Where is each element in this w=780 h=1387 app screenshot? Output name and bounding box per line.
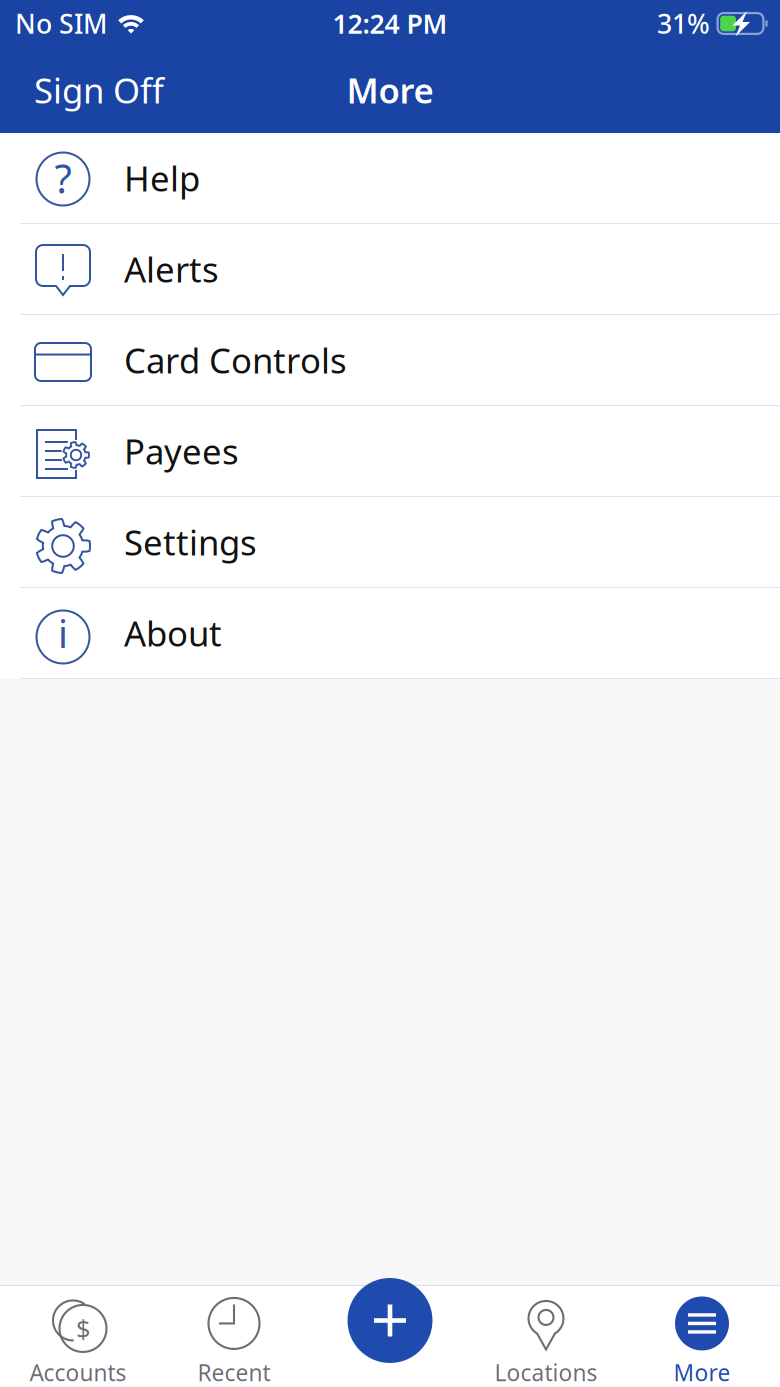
staticText: About bbox=[124, 610, 222, 656]
staticText: Help bbox=[124, 155, 200, 201]
staticText: Accounts bbox=[29, 1357, 126, 1387]
button[interactable]: Alerts bbox=[0, 224, 780, 315]
staticText: Card Controls bbox=[124, 337, 347, 383]
staticText: No SIM bbox=[15, 6, 107, 41]
staticText: Recent bbox=[197, 1357, 270, 1387]
staticText: $ bbox=[76, 1312, 90, 1345]
staticText: Sign Off bbox=[34, 67, 164, 113]
button[interactable]: i bbox=[0, 588, 780, 679]
button[interactable]: Sign Off bbox=[22, 57, 176, 123]
staticText: Locations bbox=[494, 1357, 597, 1387]
button[interactable]: $ bbox=[0, 1285, 156, 1387]
button[interactable]: Payees bbox=[0, 406, 780, 497]
button[interactable]: More bbox=[624, 1285, 780, 1387]
staticText: Settings bbox=[124, 519, 257, 565]
button[interactable]: Recent bbox=[156, 1285, 312, 1387]
button[interactable]: ? bbox=[0, 133, 780, 224]
staticText: i bbox=[58, 607, 68, 659]
staticText: 31% bbox=[657, 6, 710, 41]
button[interactable]: Settings bbox=[0, 497, 780, 588]
staticText: More bbox=[673, 1357, 730, 1387]
button[interactable]: Locations bbox=[468, 1285, 624, 1387]
staticText: ? bbox=[54, 151, 71, 204]
staticText: Alerts bbox=[124, 246, 219, 292]
staticText: Payees bbox=[124, 428, 239, 474]
staticText: More bbox=[346, 67, 433, 113]
staticText: 12:24 PM bbox=[332, 6, 447, 41]
button[interactable]: Card Controls bbox=[0, 315, 780, 406]
button[interactable]: New transaction bbox=[347, 1278, 432, 1363]
